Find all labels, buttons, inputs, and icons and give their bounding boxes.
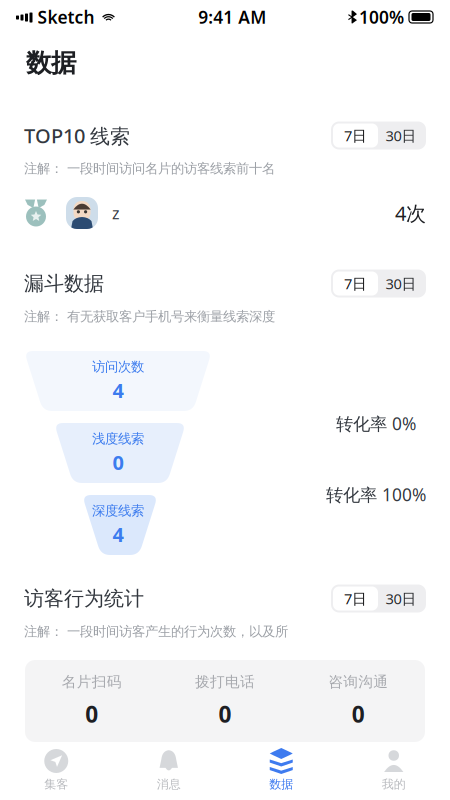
button[interactable]: 7日 bbox=[333, 271, 378, 295]
staticText: 30日 bbox=[385, 589, 416, 608]
staticText: 注解： 有无获取客户手机号来衡量线索深度 bbox=[24, 308, 275, 325]
staticText: 转化率 100% bbox=[326, 483, 426, 506]
staticText: 数据 bbox=[26, 47, 76, 78]
staticText: z bbox=[112, 202, 120, 224]
staticText: 7日 bbox=[344, 126, 367, 145]
staticText: Sketch bbox=[37, 5, 94, 28]
staticText: 0 bbox=[352, 699, 365, 729]
staticText: 100% bbox=[359, 5, 404, 28]
staticText: 0 bbox=[85, 699, 98, 729]
staticText: 7日 bbox=[344, 274, 367, 293]
staticText: 访问次数 bbox=[92, 358, 144, 375]
staticText: 30日 bbox=[385, 274, 416, 293]
staticText: 深度线索 bbox=[92, 502, 144, 519]
button[interactable]: 消息 bbox=[112, 742, 225, 800]
staticText: 0 bbox=[218, 699, 231, 729]
staticText: 漏斗数据 bbox=[24, 271, 104, 296]
staticText: 咨询沟通 bbox=[328, 673, 388, 691]
staticText: 注解： 一段时间访问名片的访客线索前十名 bbox=[24, 160, 275, 177]
staticText: 30日 bbox=[385, 126, 416, 145]
staticText: 拨打电话 bbox=[195, 673, 255, 691]
staticText: 0 bbox=[112, 449, 123, 475]
staticText: 9:41 AM bbox=[198, 5, 266, 28]
button[interactable]: 30日 bbox=[378, 271, 424, 295]
button[interactable]: 30日 bbox=[378, 123, 424, 147]
button[interactable]: 7日 bbox=[333, 123, 378, 147]
staticText: TOP10 线索 bbox=[24, 122, 130, 149]
staticText: 我的 bbox=[382, 777, 406, 792]
staticText: 4次 bbox=[395, 200, 426, 226]
staticText: 集客 bbox=[44, 777, 68, 792]
staticText: 7日 bbox=[344, 589, 367, 608]
button[interactable]: 7日 bbox=[333, 586, 378, 610]
staticText: 转化率 0% bbox=[336, 412, 416, 435]
staticText: 4 bbox=[112, 521, 123, 547]
button[interactable]: 我的 bbox=[337, 742, 450, 800]
staticText: 名片扫码 bbox=[62, 673, 122, 691]
button[interactable]: 30日 bbox=[378, 586, 424, 610]
staticText: 注解： 一段时间访客产生的行为次数，以及所 bbox=[24, 623, 288, 640]
button[interactable]: 数据 bbox=[225, 742, 337, 800]
button[interactable]: 集客 bbox=[0, 742, 112, 800]
staticText: 消息 bbox=[157, 777, 181, 792]
staticText: 数据 bbox=[269, 777, 293, 792]
staticText: 访客行为统计 bbox=[24, 586, 144, 611]
staticText: 浅度线索 bbox=[92, 430, 144, 447]
staticText: 4 bbox=[112, 377, 123, 403]
